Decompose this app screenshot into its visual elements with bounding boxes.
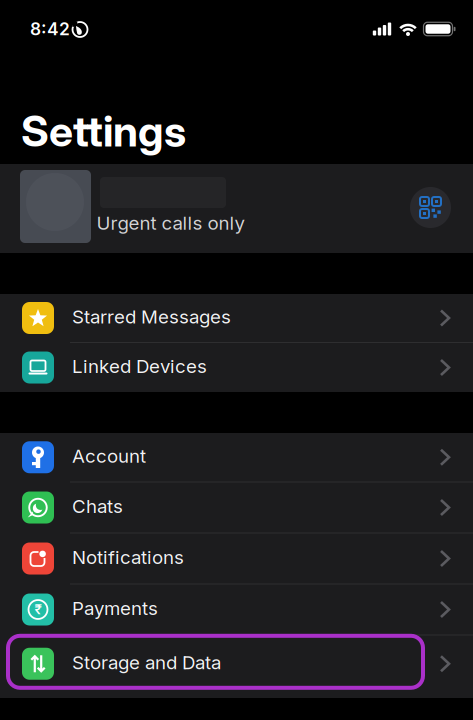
button[interactable]: Account bbox=[0, 441, 473, 473]
button[interactable]: Show QR code bbox=[410, 187, 451, 228]
staticText: Storage and Data bbox=[72, 651, 221, 673]
staticText: Chats bbox=[72, 495, 123, 517]
staticText: Settings bbox=[21, 105, 186, 157]
button[interactable]: Notifications bbox=[0, 542, 473, 574]
button[interactable]: Linked Devices bbox=[0, 351, 473, 383]
staticText: Urgent calls only bbox=[96, 212, 244, 234]
staticText: Payments bbox=[72, 597, 158, 619]
button[interactable]: ₹ bbox=[0, 593, 473, 625]
staticText: ₹ bbox=[34, 602, 41, 617]
staticText: 8:42 bbox=[30, 19, 70, 39]
button[interactable]: Starred Messages bbox=[0, 302, 473, 334]
button[interactable]: Chats bbox=[0, 491, 473, 523]
button[interactable]: Urgent calls only bbox=[0, 164, 473, 253]
button[interactable]: Storage and Data bbox=[0, 648, 473, 680]
staticText: Account bbox=[72, 445, 146, 467]
staticText: Starred Messages bbox=[72, 306, 231, 328]
staticText: Linked Devices bbox=[72, 355, 207, 377]
staticText: Notifications bbox=[72, 546, 184, 568]
